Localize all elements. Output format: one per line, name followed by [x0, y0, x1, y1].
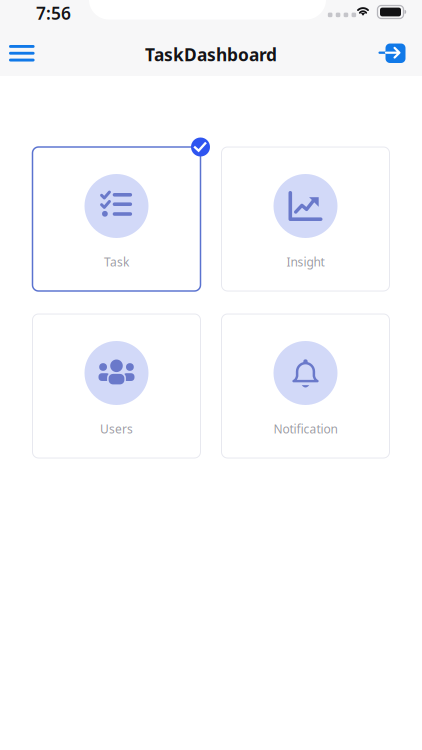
- staticText: 7:56: [36, 1, 71, 24]
- staticText: Users: [100, 421, 133, 437]
- button[interactable]: Insight: [221, 147, 389, 291]
- button[interactable]: Menu: [0, 33, 44, 73]
- staticText: TaskDashboard: [145, 43, 277, 66]
- button[interactable]: Notification: [221, 314, 389, 458]
- button[interactable]: Log out: [371, 33, 414, 73]
- button[interactable]: Task: [32, 147, 200, 291]
- staticText: Notification: [273, 421, 337, 437]
- button[interactable]: Users: [32, 314, 200, 458]
- staticText: Insight: [286, 254, 324, 270]
- staticText: Task: [104, 254, 129, 270]
